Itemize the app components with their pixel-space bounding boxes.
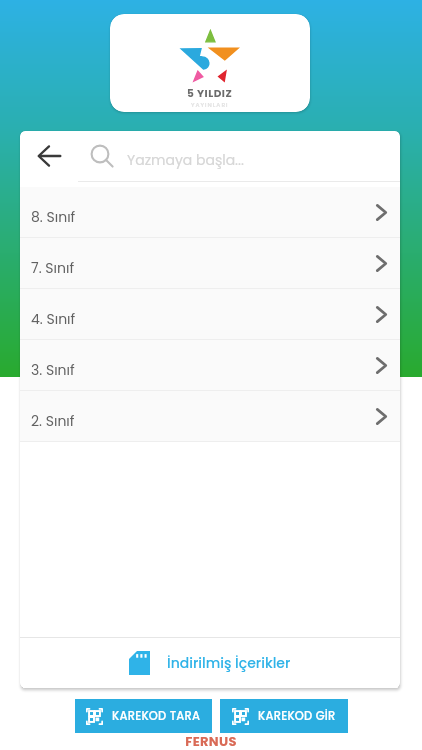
staticText: FERNUS bbox=[0, 732, 422, 750]
staticText: 3. Sınıf bbox=[31, 360, 75, 380]
button[interactable]: KAREKOD GİR bbox=[220, 699, 348, 733]
staticText: KAREKOD GİR bbox=[258, 708, 336, 724]
button[interactable]: 4. Sınıf bbox=[20, 289, 400, 339]
staticText: 2. Sınıf bbox=[31, 411, 75, 431]
staticText: 7. Sınıf bbox=[31, 258, 74, 278]
staticText: İndirilmiş İçerikler bbox=[167, 653, 291, 673]
button[interactable]: 8. Sınıf bbox=[20, 187, 400, 237]
button[interactable]: 3. Sınıf bbox=[20, 340, 400, 390]
staticText: KAREKOD TARA bbox=[112, 708, 201, 724]
staticText: 8. Sınıf bbox=[31, 207, 76, 227]
button[interactable]: Back bbox=[27, 134, 71, 178]
staticText: 5 YILDIZ bbox=[187, 86, 233, 101]
button[interactable]: KAREKOD TARA bbox=[75, 699, 212, 733]
button[interactable]: 7. Sınıf bbox=[20, 238, 400, 288]
button[interactable]: 2. Sınıf bbox=[20, 391, 400, 441]
button[interactable]: İndirilmiş İçerikler bbox=[20, 638, 400, 688]
staticText: YAYINLARI bbox=[191, 101, 229, 109]
staticText: 4. Sınıf bbox=[31, 309, 76, 329]
staticText: Yazmaya başla... bbox=[127, 150, 244, 170]
